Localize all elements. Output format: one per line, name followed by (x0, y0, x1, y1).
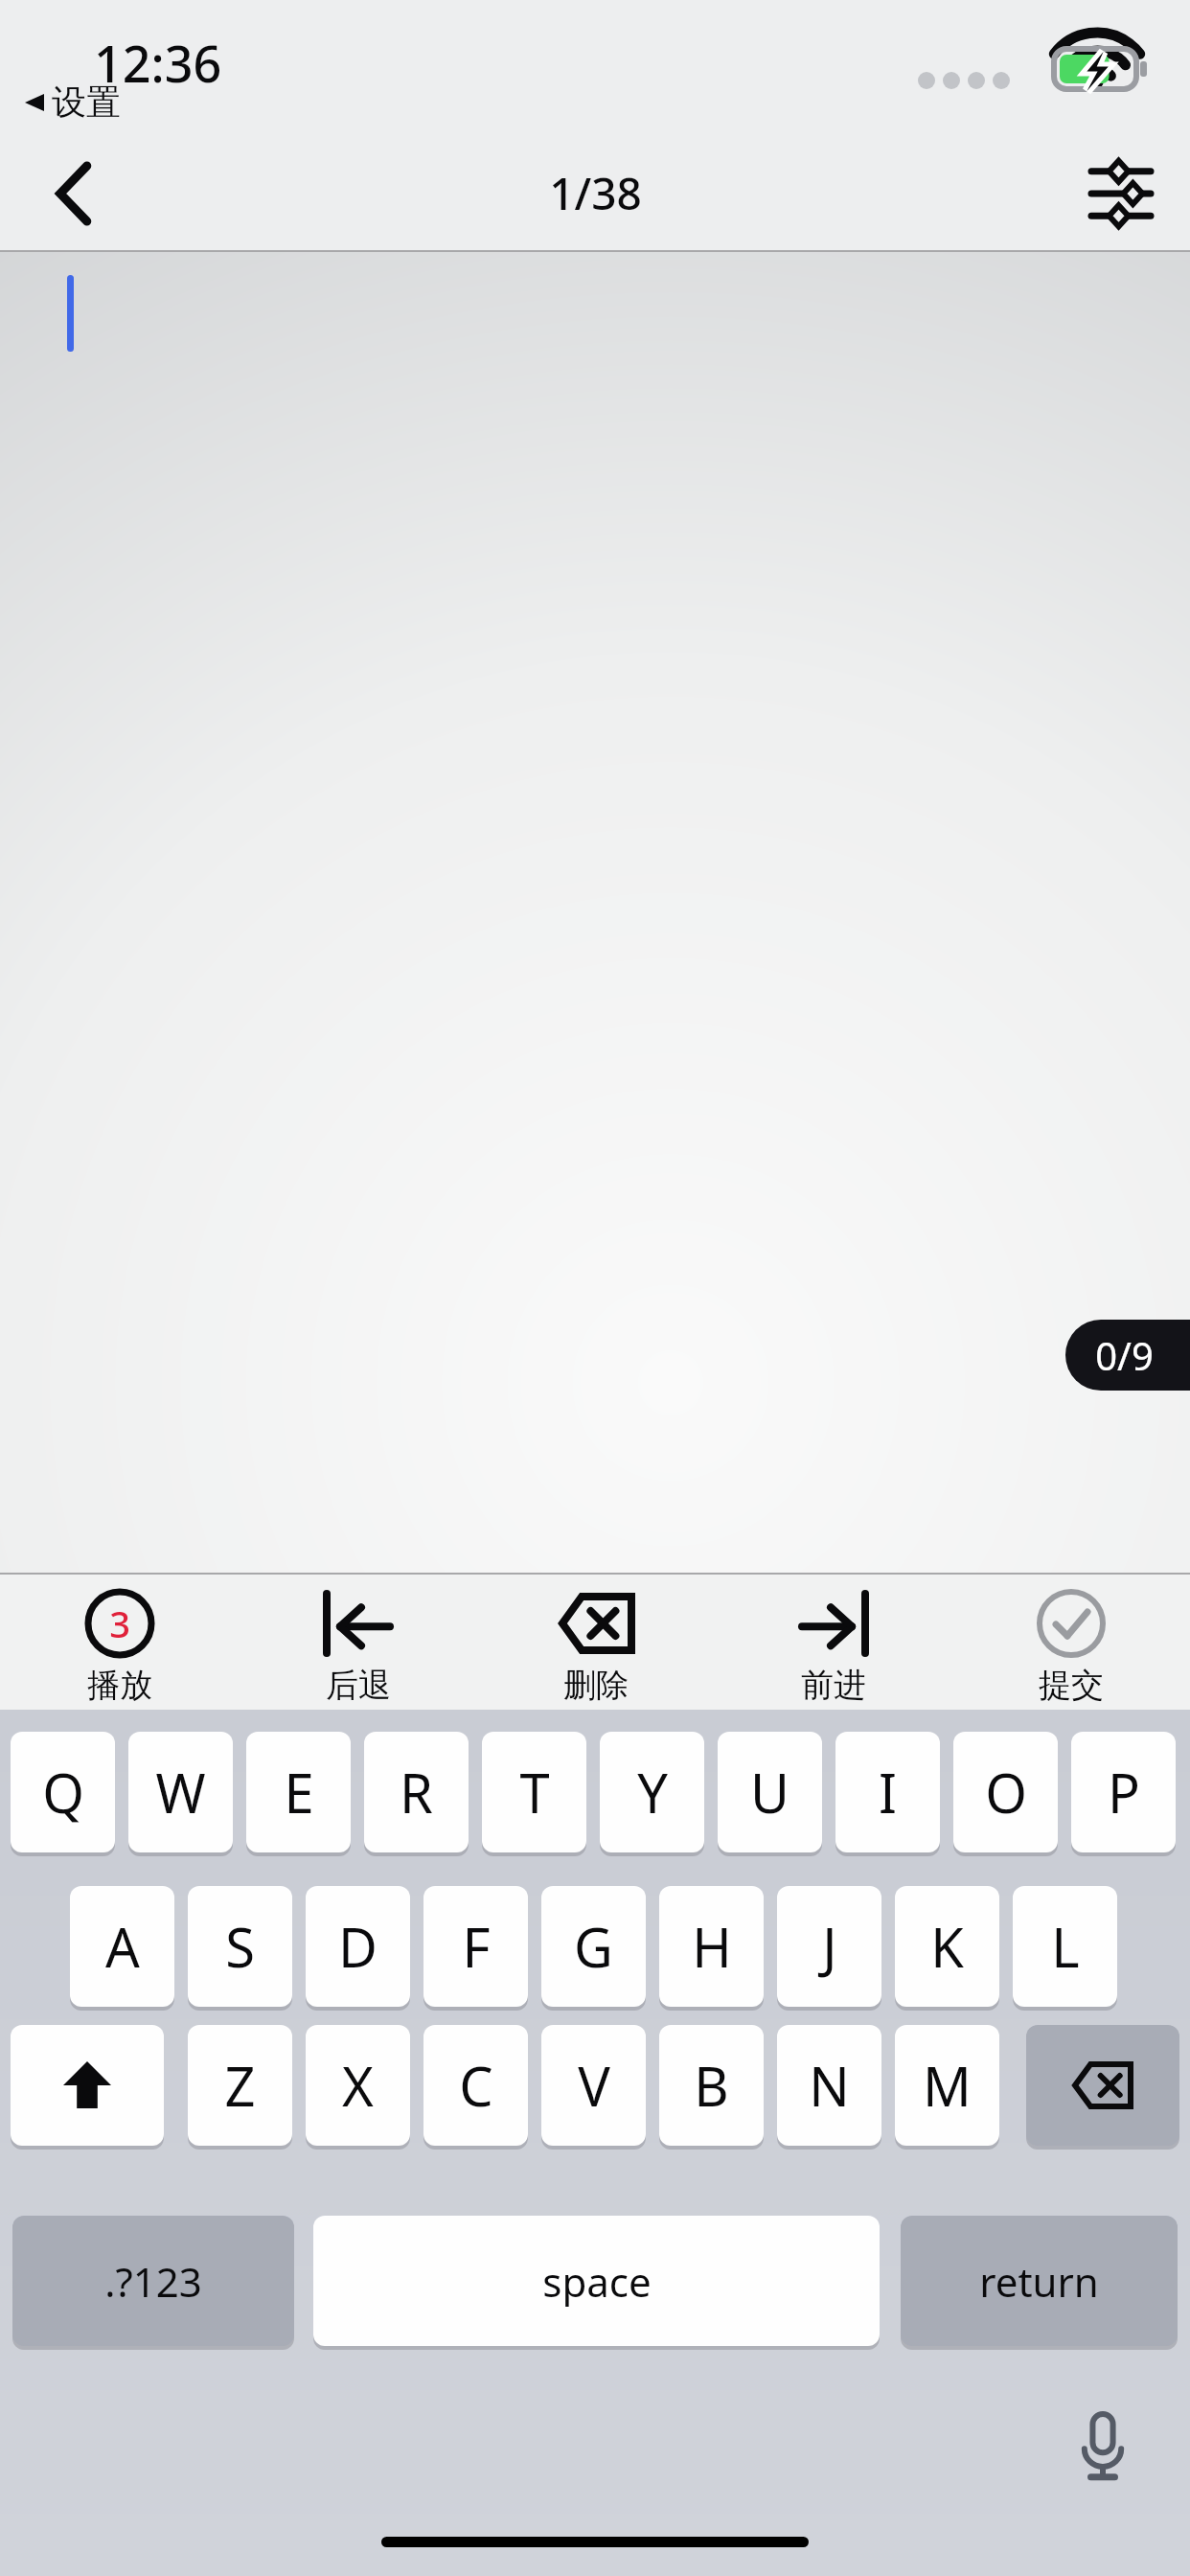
staticText: O (985, 1756, 1027, 1828)
staticText: Y (637, 1756, 668, 1828)
staticText: 3 (109, 1598, 130, 1648)
button[interactable]: 3 (0, 1573, 239, 1710)
button[interactable]: U (718, 1732, 822, 1852)
button[interactable]: P (1071, 1732, 1176, 1852)
button[interactable]: Z (188, 2025, 292, 2146)
staticText: K (930, 1910, 964, 1983)
staticText: M (923, 2049, 972, 2122)
staticText: 设置 (52, 80, 121, 124)
button[interactable]: D (306, 1886, 410, 2007)
staticText: L (1051, 1910, 1080, 1983)
staticText: N (809, 2049, 850, 2122)
staticText: 删除 (563, 1665, 629, 1706)
button[interactable]: 提交 (952, 1573, 1190, 1710)
staticText: V (578, 2049, 610, 2122)
staticText: A (105, 1910, 140, 1983)
staticText: S (225, 1910, 255, 1983)
staticText: H (692, 1910, 732, 1983)
button[interactable]: 语音输入 (1062, 2405, 1144, 2488)
button[interactable]: V (541, 2025, 646, 2146)
button[interactable]: 删除 (477, 1573, 715, 1710)
staticText: T (519, 1756, 550, 1828)
button[interactable]: K (895, 1886, 999, 2007)
button[interactable]: T (482, 1732, 586, 1852)
button[interactable]: 返回 (29, 148, 121, 240)
button[interactable]: 前进 (715, 1573, 952, 1710)
staticText: X (342, 2049, 374, 2122)
button[interactable]: 退格 (1026, 2025, 1179, 2146)
staticText: 提交 (1039, 1665, 1104, 1706)
button[interactable]: J (777, 1886, 881, 2007)
button[interactable]: O (953, 1732, 1058, 1852)
button[interactable]: I (835, 1732, 940, 1852)
staticText: C (459, 2049, 493, 2122)
staticText: return (979, 2254, 1099, 2309)
button[interactable]: A (70, 1886, 174, 2007)
button[interactable]: F (423, 1886, 528, 2007)
staticText: F (462, 1910, 491, 1983)
button[interactable]: 0/9 (1065, 1320, 1190, 1391)
button[interactable]: S (188, 1886, 292, 2007)
staticText: 12:36 (94, 29, 222, 97)
staticText: G (574, 1910, 613, 1983)
button[interactable]: X (306, 2025, 410, 2146)
button[interactable]: Y (600, 1732, 704, 1852)
button[interactable]: C (423, 2025, 528, 2146)
staticText: R (400, 1756, 433, 1828)
staticText: 0/9 (1095, 1329, 1154, 1381)
button[interactable]: 换行 (901, 2216, 1178, 2346)
staticText: 1/38 (549, 163, 642, 223)
staticText: W (155, 1756, 206, 1828)
button[interactable]: G (541, 1886, 646, 2007)
staticText: P (1108, 1756, 1140, 1828)
staticText: 播放 (87, 1665, 152, 1706)
staticText: I (879, 1756, 897, 1828)
button[interactable]: N (777, 2025, 881, 2146)
staticText: E (284, 1756, 314, 1828)
button[interactable]: 设置 (1075, 148, 1167, 240)
button[interactable]: E (246, 1732, 351, 1852)
button[interactable]: 返回设置 (21, 79, 125, 126)
button[interactable]: Q (11, 1732, 115, 1852)
button[interactable]: H (659, 1886, 764, 2007)
button[interactable]: 后退 (239, 1573, 477, 1710)
button[interactable]: Shift (11, 2025, 164, 2146)
staticText: Q (42, 1756, 84, 1828)
staticText: 前进 (801, 1665, 866, 1706)
button[interactable]: R (364, 1732, 469, 1852)
button[interactable]: B (659, 2025, 764, 2146)
staticText: J (822, 1910, 837, 1983)
staticText: Z (224, 2049, 256, 2122)
button[interactable]: L (1013, 1886, 1117, 2007)
staticText: U (750, 1756, 790, 1828)
button[interactable]: M (895, 2025, 999, 2146)
button[interactable]: 空格 (313, 2216, 880, 2346)
staticText: B (694, 2049, 729, 2122)
button[interactable]: W (128, 1732, 233, 1852)
staticText: 后退 (326, 1665, 391, 1706)
button[interactable]: .?123 (12, 2216, 294, 2346)
staticText: space (542, 2254, 652, 2309)
staticText: D (338, 1910, 378, 1983)
staticText: .?123 (104, 2254, 202, 2309)
